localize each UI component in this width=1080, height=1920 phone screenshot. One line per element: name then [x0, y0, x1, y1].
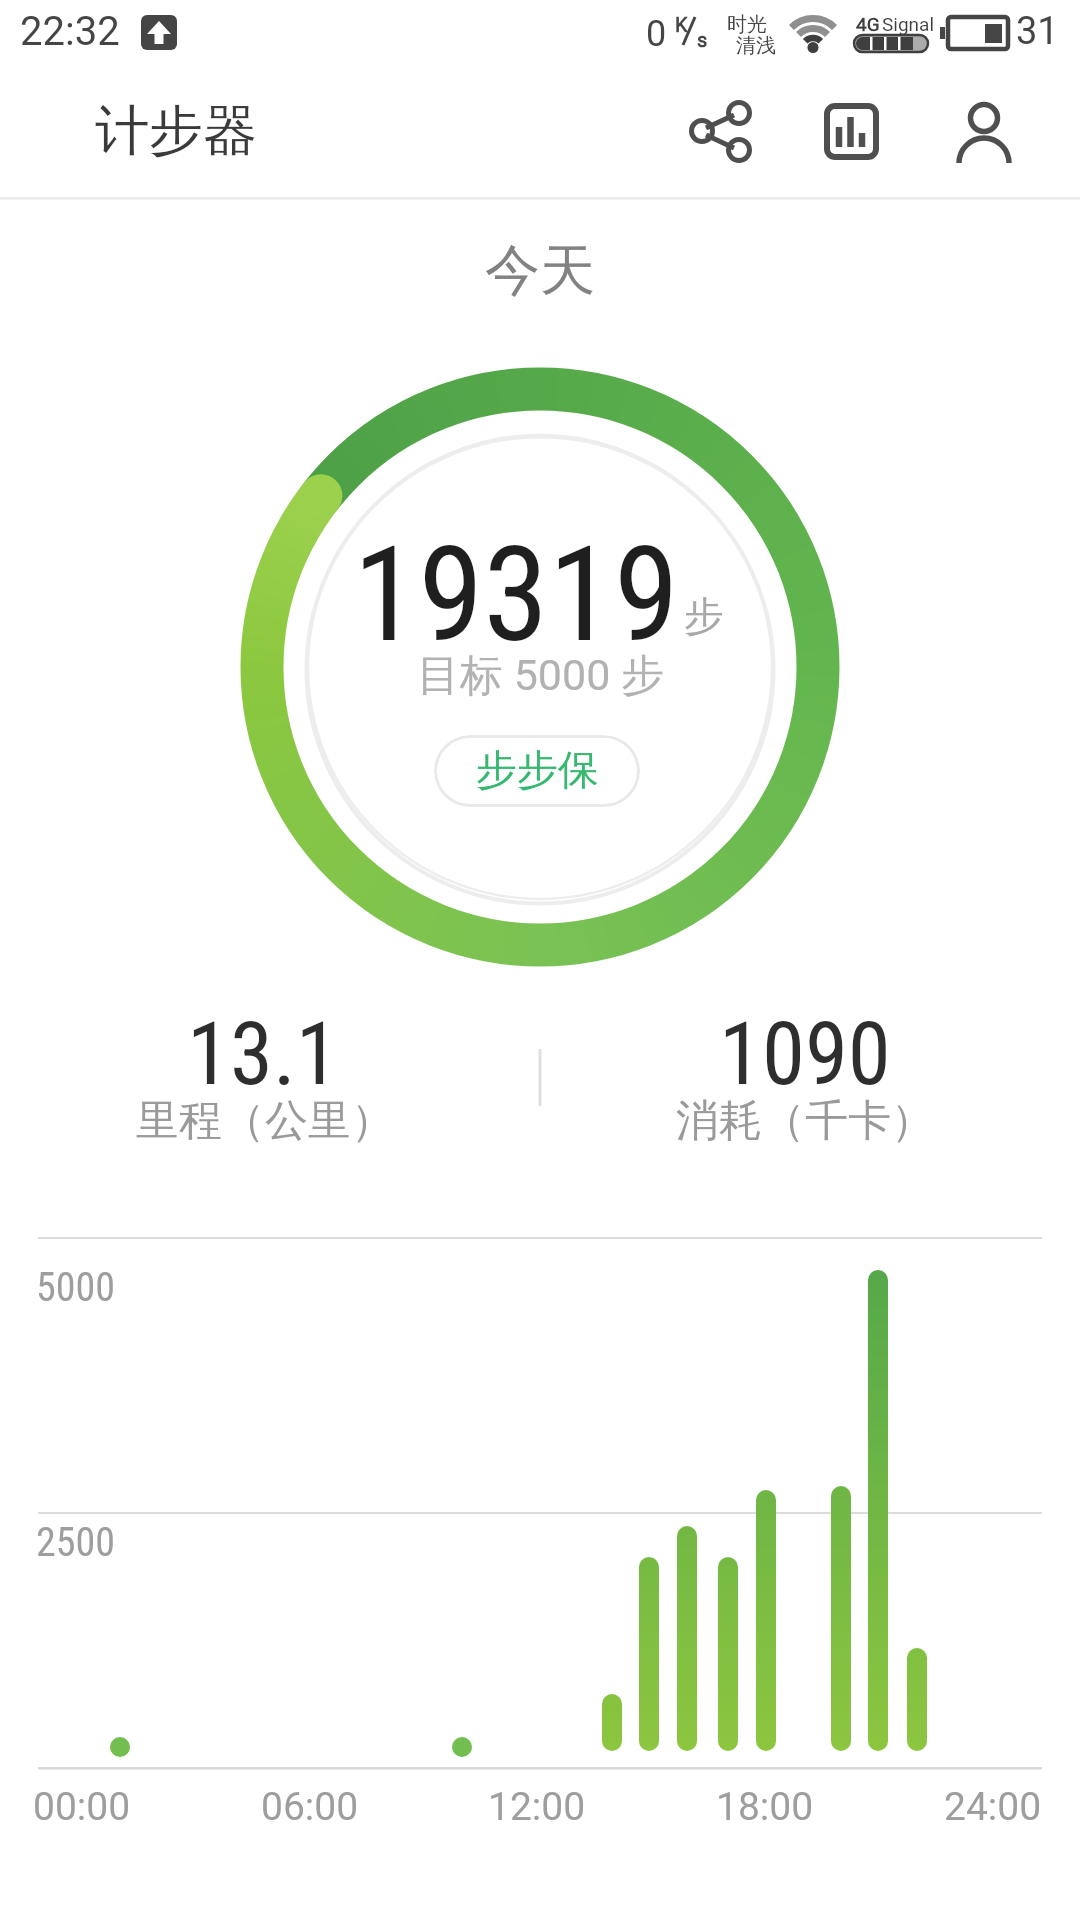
- staticText: 4G: [856, 13, 880, 35]
- staticText: 步步保: [476, 745, 599, 797]
- staticText: 13.1: [187, 1003, 339, 1105]
- staticText: 19319: [353, 518, 679, 673]
- staticText: 步: [684, 591, 724, 641]
- staticText: 清浅: [736, 33, 776, 58]
- staticText: 0: [646, 13, 667, 55]
- staticText: 24:00: [944, 1784, 1042, 1830]
- staticText: 目标 5000 步: [417, 649, 664, 703]
- staticText: Signal: [882, 13, 935, 35]
- staticText: 计步器: [95, 97, 257, 165]
- staticText: 里程（公里）: [136, 1094, 394, 1148]
- staticText: 06:00: [261, 1784, 359, 1830]
- staticText: 消耗（千卡）: [676, 1094, 934, 1148]
- button[interactable]: [818, 98, 884, 164]
- staticText: 00:00: [33, 1784, 131, 1830]
- staticText: 时光: [727, 12, 767, 37]
- staticText: 5000: [36, 1264, 115, 1311]
- staticText: K: [675, 13, 688, 36]
- staticText: 22:32: [20, 8, 120, 55]
- staticText: 12:00: [488, 1784, 586, 1830]
- staticText: 2500: [36, 1519, 115, 1566]
- staticText: 31: [1016, 9, 1059, 54]
- button[interactable]: [951, 98, 1017, 164]
- staticText: 今天: [485, 236, 595, 305]
- button[interactable]: 步步保: [434, 735, 640, 807]
- staticText: s: [697, 28, 708, 51]
- button[interactable]: [685, 98, 751, 164]
- staticText: 1090: [719, 1003, 891, 1105]
- staticText: 18:00: [716, 1784, 814, 1830]
